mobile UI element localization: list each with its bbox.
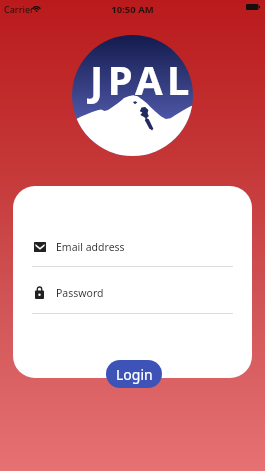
staticText: Carrier — [4, 3, 34, 15]
staticText: Password — [56, 286, 104, 300]
button[interactable]: Password — [34, 283, 233, 302]
other: Battery — [246, 4, 260, 10]
button[interactable]: Email address — [34, 237, 233, 256]
staticText: 10:50 AM — [0, 3, 265, 16]
other: Wi-Fi — [32, 5, 41, 12]
button[interactable]: Login — [106, 360, 162, 388]
staticText: Email address — [56, 240, 125, 254]
staticText: JPAL — [90, 52, 193, 106]
staticText: Login — [116, 365, 153, 384]
